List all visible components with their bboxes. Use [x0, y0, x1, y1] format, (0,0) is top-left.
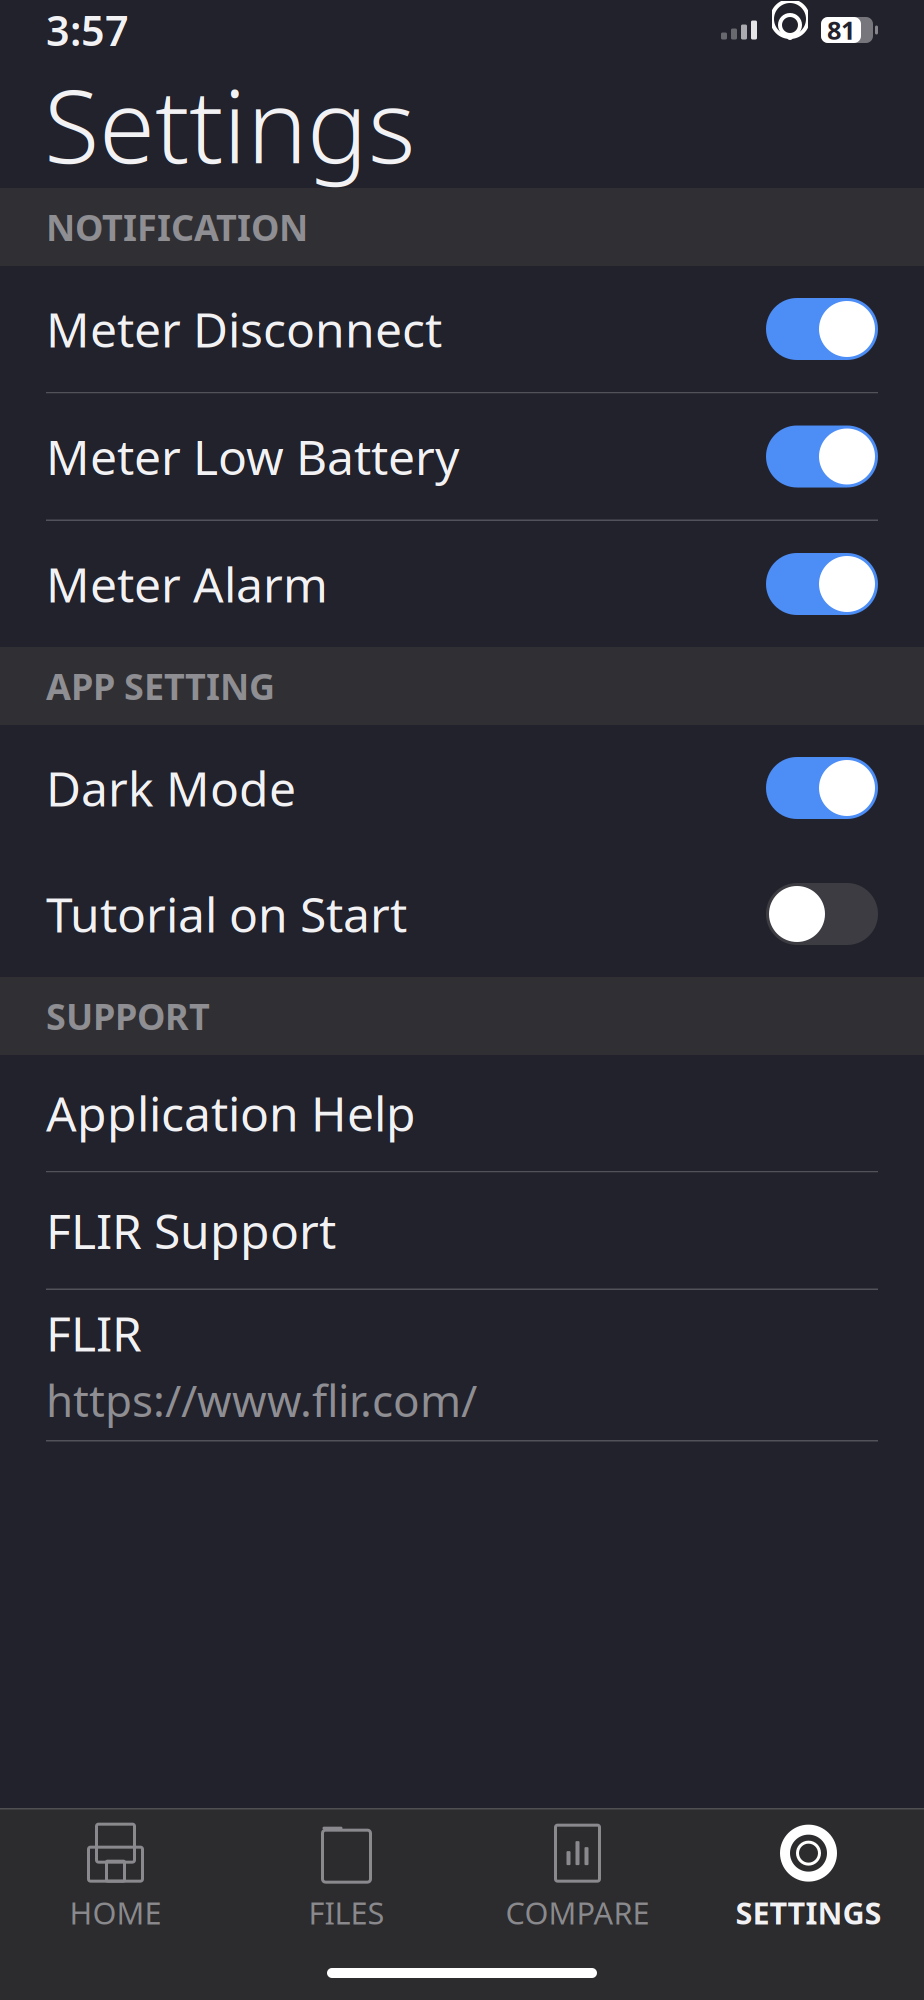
button[interactable]: SETTINGS	[693, 1823, 924, 1933]
staticText: Meter Disconnect	[46, 297, 442, 361]
button[interactable]: FLIR	[0, 1290, 924, 1440]
staticText: https://www.flir.com/	[46, 1371, 477, 1429]
staticText: Meter Alarm	[46, 552, 328, 616]
staticText: 3:57	[46, 3, 129, 57]
button[interactable]: FLIR Support	[0, 1172, 924, 1288]
button[interactable]: Application Help	[0, 1055, 924, 1171]
button[interactable]: COMPARE	[462, 1823, 693, 1933]
button[interactable]: Meter Low Battery	[0, 393, 924, 519]
button[interactable]: HOME	[0, 1823, 231, 1933]
staticText: NOTIFICATION	[46, 203, 308, 251]
staticText: SUPPORT	[46, 992, 210, 1040]
button[interactable]: Tutorial on Start	[0, 851, 924, 977]
staticText: Tutorial on Start	[46, 882, 407, 946]
staticText: HOME	[69, 1892, 161, 1933]
button[interactable]: Dark Mode	[0, 725, 924, 851]
staticText: Meter Low Battery	[46, 425, 459, 488]
button[interactable]: Meter Disconnect	[0, 266, 924, 392]
staticText: APP SETTING	[46, 662, 275, 710]
staticText: Settings	[44, 57, 416, 191]
button[interactable]: Meter Alarm	[0, 521, 924, 647]
staticText: FLIR Support	[46, 1199, 336, 1262]
staticText: COMPARE	[505, 1892, 649, 1933]
button[interactable]: FILES	[231, 1823, 462, 1933]
staticText: Dark Mode	[46, 756, 296, 820]
staticText: 81	[827, 13, 855, 47]
staticText: FLIR	[46, 1301, 142, 1365]
staticText: FILES	[308, 1892, 384, 1933]
staticText: Application Help	[46, 1081, 416, 1145]
staticText: SETTINGS	[735, 1892, 881, 1933]
